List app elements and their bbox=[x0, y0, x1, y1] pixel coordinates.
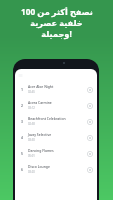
button[interactable]: More options bbox=[86, 86, 93, 93]
button[interactable]: 3 bbox=[15, 113, 97, 129]
staticText: 03:30 bbox=[28, 138, 35, 142]
button[interactable]: More options bbox=[86, 166, 93, 173]
button[interactable]: 2 bbox=[15, 97, 97, 113]
button[interactable]: More options bbox=[86, 118, 93, 125]
staticText: نصفح أكثر من 100 bbox=[21, 6, 93, 17]
staticText: 05:01 bbox=[28, 154, 35, 158]
button[interactable]: 6 bbox=[15, 161, 97, 177]
staticText: 3 bbox=[21, 119, 23, 124]
staticText: Dancing Flames bbox=[28, 148, 54, 153]
staticText: 2 bbox=[21, 103, 23, 108]
staticText: 5 bbox=[21, 151, 23, 156]
staticText: Disco Lounge bbox=[28, 164, 50, 169]
staticText: 6 bbox=[21, 167, 23, 172]
staticText: خلفية عصرية bbox=[30, 17, 83, 28]
button[interactable]: 5 bbox=[15, 145, 97, 161]
button[interactable]: 4 bbox=[15, 129, 97, 145]
staticText: 03:20 bbox=[28, 170, 35, 174]
staticText: Beachfront Celebration bbox=[28, 116, 66, 121]
staticText: Jazzy Selective bbox=[28, 132, 52, 137]
staticText: 4 bbox=[21, 135, 23, 140]
button[interactable]: Menu bbox=[18, 73, 23, 78]
staticText: 03:12 bbox=[28, 106, 35, 110]
staticText: Acer Aloe Night bbox=[28, 84, 54, 89]
button[interactable]: More options bbox=[86, 134, 93, 141]
staticText: Acera Carmine bbox=[28, 100, 52, 105]
staticText: 02:45 bbox=[28, 90, 35, 94]
button[interactable]: More options bbox=[86, 150, 93, 157]
staticText: 02:58 bbox=[28, 122, 35, 126]
staticText: 1 bbox=[21, 87, 23, 92]
button[interactable]: 1 bbox=[15, 81, 97, 97]
button[interactable]: More options bbox=[86, 102, 93, 109]
staticText: وجميلة! bbox=[41, 28, 72, 39]
